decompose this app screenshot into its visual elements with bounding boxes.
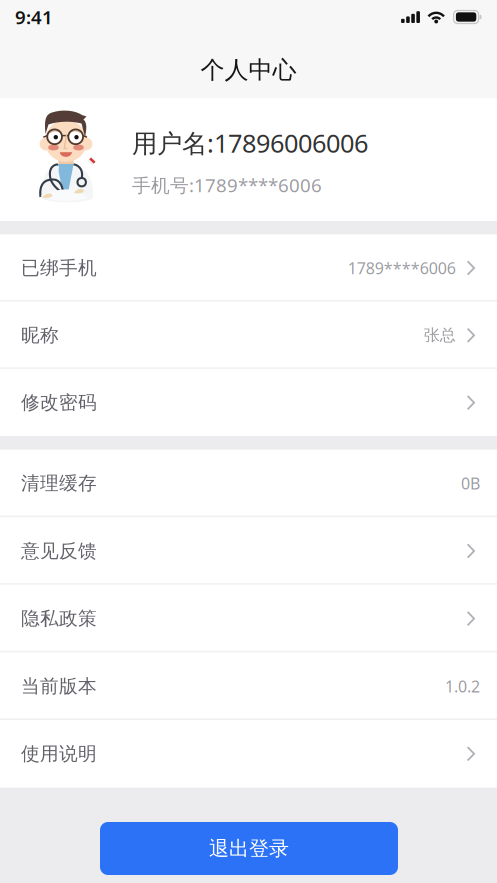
button[interactable]: 退出登录 bbox=[100, 822, 398, 875]
staticText: 用户名:17896006006 bbox=[132, 126, 368, 160]
staticText: 张总 bbox=[424, 325, 456, 345]
staticText: 0B bbox=[461, 473, 480, 494]
staticText: 1.0.2 bbox=[445, 676, 480, 697]
button[interactable]: 隐私政策 bbox=[0, 585, 497, 652]
staticText: 使用说明 bbox=[21, 742, 97, 765]
staticText: 意见反馈 bbox=[21, 539, 97, 562]
button[interactable]: 当前版本 bbox=[0, 652, 497, 720]
button[interactable]: 清理缓存 bbox=[0, 450, 497, 517]
staticText: 当前版本 bbox=[21, 675, 97, 698]
staticText: 个人中心 bbox=[200, 55, 296, 85]
staticText: 隐私政策 bbox=[21, 607, 97, 630]
staticText: 退出登录 bbox=[209, 836, 289, 861]
staticText: 手机号:1789****6006 bbox=[132, 173, 322, 197]
staticText: 修改密码 bbox=[21, 391, 97, 414]
staticText: 清理缓存 bbox=[21, 472, 97, 495]
button[interactable]: 昵称 bbox=[0, 302, 497, 369]
button[interactable]: 意见反馈 bbox=[0, 517, 497, 585]
staticText: 1789****6006 bbox=[348, 257, 456, 278]
staticText: 9:41 bbox=[15, 5, 53, 29]
button[interactable]: 修改密码 bbox=[0, 369, 497, 436]
staticText: 昵称 bbox=[21, 324, 59, 347]
button[interactable]: 使用说明 bbox=[0, 720, 497, 788]
staticText: 已绑手机 bbox=[21, 256, 97, 279]
button[interactable]: 已绑手机 bbox=[0, 234, 497, 302]
